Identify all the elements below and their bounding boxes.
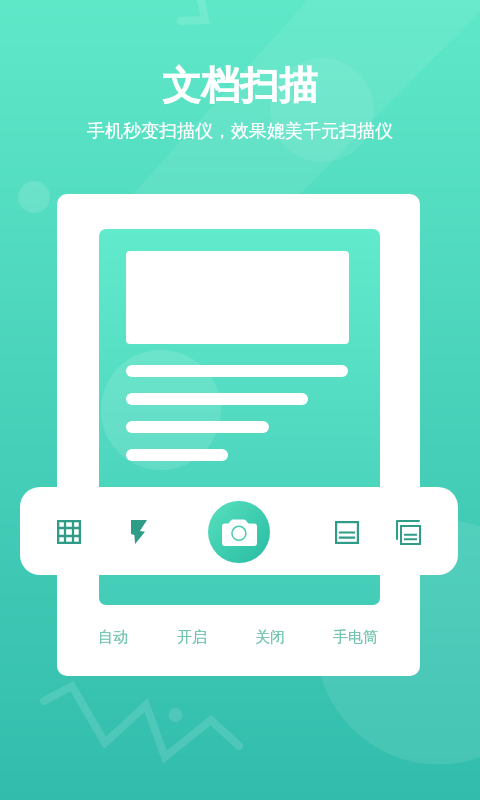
button[interactable]: Single page — [323, 508, 371, 556]
staticText: 手机秒变扫描仪，效果媲美千元扫描仪 — [87, 120, 393, 143]
staticText: 自动 — [98, 628, 128, 647]
button[interactable]: 关闭 — [245, 620, 295, 655]
staticText: 文档扫描 — [162, 61, 318, 110]
staticText: 关闭 — [255, 628, 285, 647]
button[interactable]: Grid — [45, 508, 93, 556]
staticText: 开启 — [177, 628, 207, 647]
button[interactable]: Multiple pages — [384, 508, 432, 556]
button[interactable]: Shutter — [208, 501, 270, 563]
button[interactable]: 手电筒 — [323, 620, 388, 655]
button[interactable]: Flash — [115, 508, 163, 556]
button[interactable]: 自动 — [88, 620, 138, 655]
button[interactable]: 开启 — [167, 620, 217, 655]
staticText: 手电筒 — [333, 628, 378, 647]
